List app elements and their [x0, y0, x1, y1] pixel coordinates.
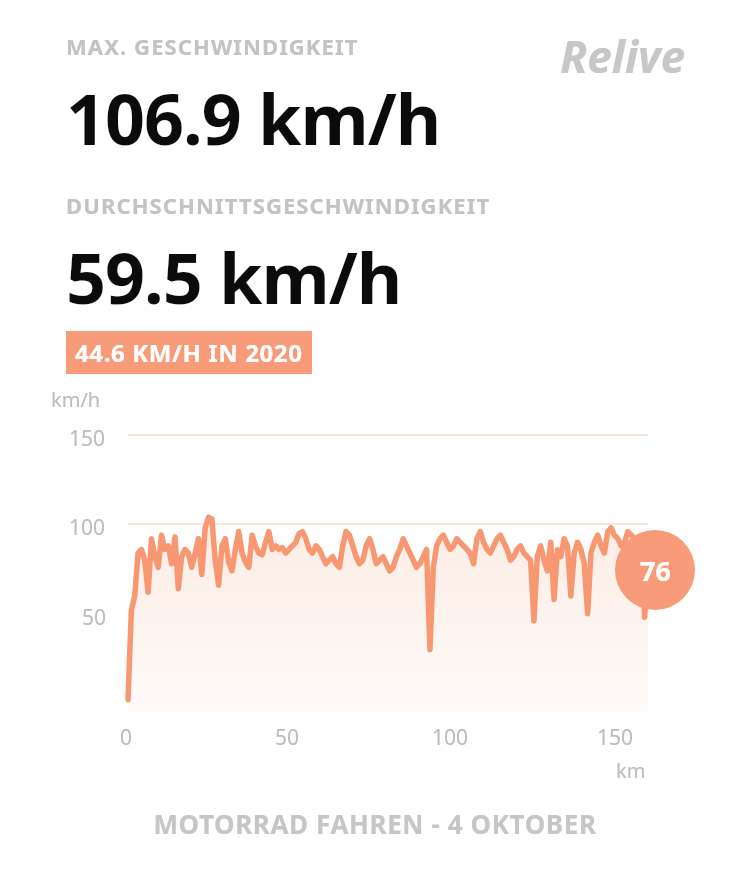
button[interactable]: Relive [540, 26, 705, 86]
staticText: 59.5 km/h [66, 229, 402, 324]
button[interactable]: 76 [615, 530, 695, 610]
staticText: 76 [640, 552, 671, 589]
staticText: MAX. GESCHWINDIGKEIT [66, 31, 359, 61]
staticText: 100 [432, 723, 469, 752]
staticText: 100 [69, 513, 106, 542]
staticText: km/h [51, 386, 101, 413]
staticText: DURCHSCHNITTSGESCHWINDIGKEIT [66, 190, 491, 220]
staticText: 150 [597, 723, 634, 752]
staticText: 50 [82, 603, 107, 632]
staticText: MOTORRAD FAHREN - 4 OKTOBER [153, 806, 597, 841]
staticText: km [616, 757, 646, 784]
button[interactable]: 44.6 KM/H IN 2020 [66, 331, 312, 374]
staticText: 0 [120, 723, 133, 752]
staticText: 50 [275, 723, 300, 752]
staticText: Relive [560, 26, 686, 86]
staticText: 106.9 km/h [66, 70, 441, 165]
staticText: 150 [69, 424, 106, 453]
staticText: 44.6 KM/H IN 2020 [75, 336, 303, 369]
button[interactable]: MOTORRAD FAHREN - 4 OKTOBER [0, 806, 750, 841]
